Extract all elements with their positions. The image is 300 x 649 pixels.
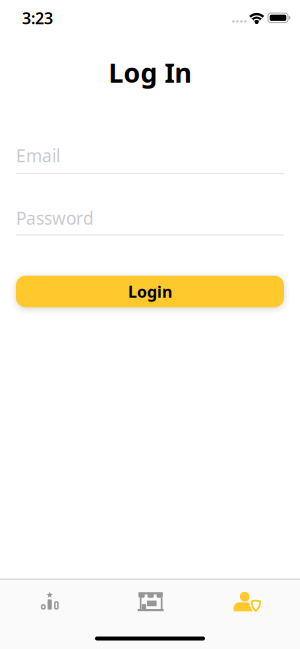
button[interactable]: Account: [201, 579, 299, 623]
staticText: 3:23: [22, 7, 53, 29]
staticText: Login: [128, 281, 172, 302]
button[interactable]: Leaderboard: [1, 579, 99, 623]
staticText: Password: [16, 206, 94, 229]
button[interactable]: Login: [16, 276, 284, 307]
button[interactable]: Store: [101, 579, 199, 623]
staticText: Email: [16, 144, 60, 167]
staticText: Log In: [108, 55, 191, 90]
